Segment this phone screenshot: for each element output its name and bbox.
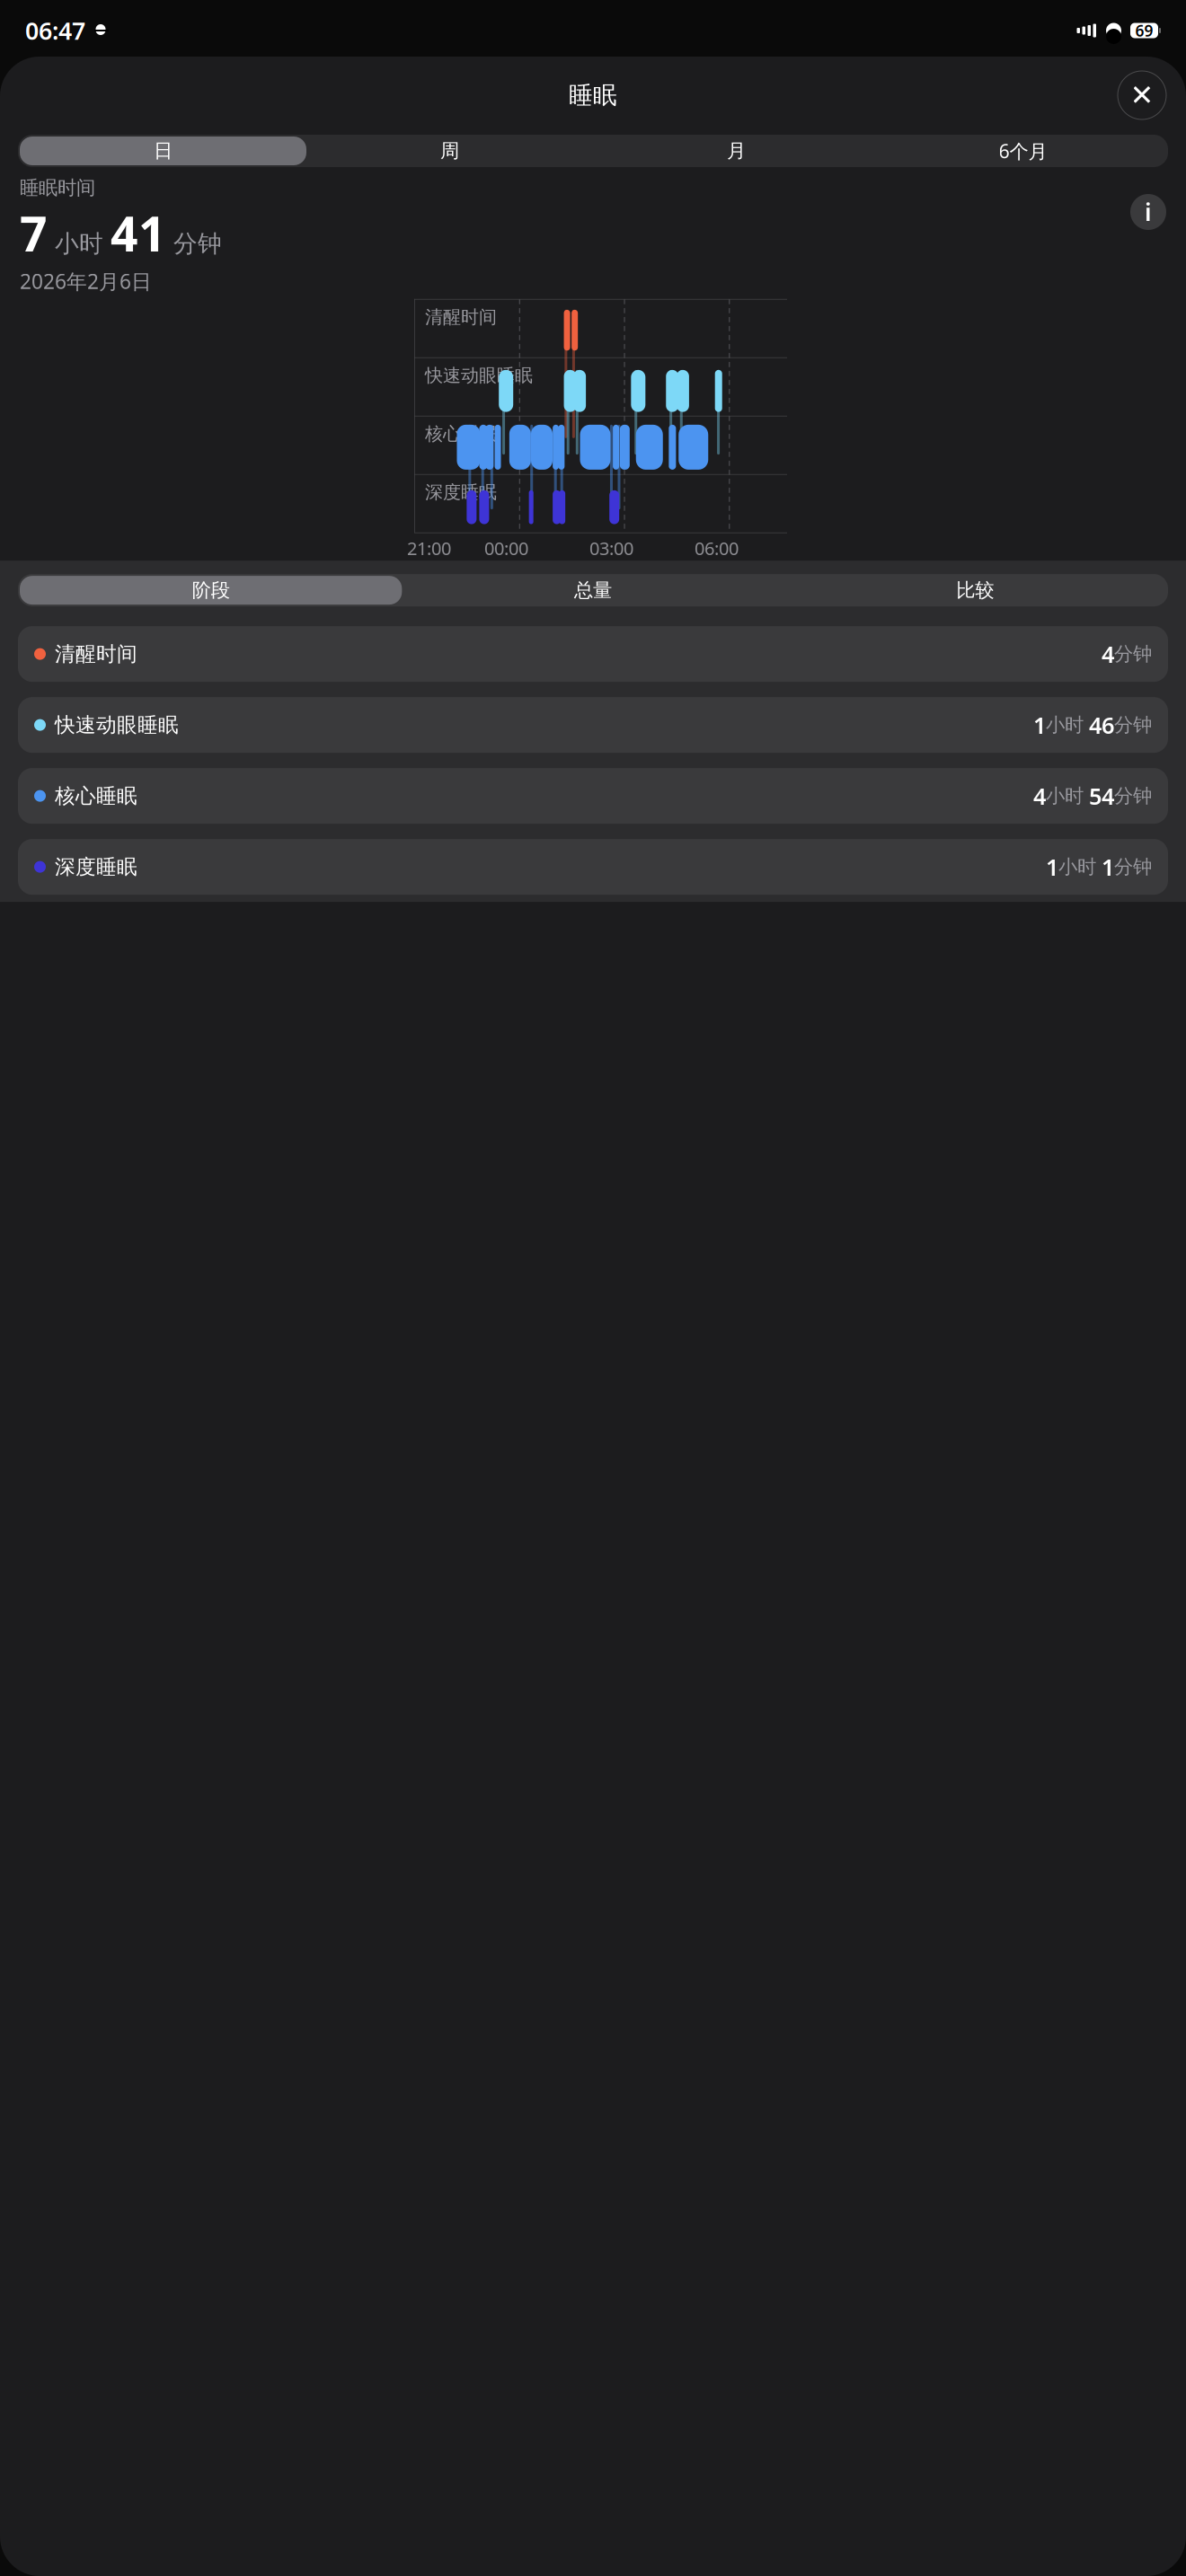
staticText: 4 <box>1033 781 1046 811</box>
staticText: 7 <box>20 201 48 265</box>
staticText: 清醒时间 <box>425 306 497 328</box>
staticText: 1 <box>1033 710 1046 740</box>
staticText: 分钟 <box>1114 642 1152 666</box>
staticText: 睡眠时间 <box>20 176 95 200</box>
staticText: 1 <box>1046 852 1058 882</box>
button[interactable]: 快速动眼睡眠 <box>18 697 1168 753</box>
staticText: 小时 <box>1046 713 1089 737</box>
staticText: 分钟 <box>166 229 222 259</box>
staticText: 6个月 <box>999 138 1047 164</box>
staticText: 清醒时间 <box>55 641 137 666</box>
staticText: 21:00 <box>407 536 451 560</box>
staticText: 快速动眼睡眠 <box>425 364 533 387</box>
staticText: 小时 <box>48 229 111 259</box>
staticText: 周 <box>440 139 459 163</box>
button[interactable]: 周 <box>306 137 593 165</box>
button[interactable]: 清醒时间 <box>18 626 1168 682</box>
staticText: 分钟 <box>1114 784 1152 808</box>
staticText: 阶段 <box>192 578 230 602</box>
staticText: 46 <box>1089 710 1114 740</box>
staticText: 核心睡眠 <box>55 783 137 808</box>
staticText: 分钟 <box>1114 713 1152 737</box>
staticText: 00:00 <box>484 536 528 560</box>
staticText: 41 <box>111 201 166 265</box>
staticText: 深度睡眠 <box>425 481 497 503</box>
button[interactable]: 日 <box>20 137 306 165</box>
staticText: ✕ <box>1130 79 1154 111</box>
staticText: 核心睡眠 <box>425 423 497 445</box>
staticText: 69 <box>1135 20 1153 41</box>
staticText: 54 <box>1089 781 1114 811</box>
staticText: 总量 <box>574 578 612 602</box>
button[interactable]: 核心睡眠 <box>18 768 1168 824</box>
staticText: 月 <box>727 139 746 163</box>
staticText: 03:00 <box>589 536 633 560</box>
staticText: 小时 <box>1058 855 1102 879</box>
staticText: 快速动眼睡眠 <box>55 712 179 737</box>
staticText: 4 <box>1102 639 1114 669</box>
button[interactable]: 关闭 <box>1118 71 1166 119</box>
button[interactable]: 月 <box>593 137 880 165</box>
button[interactable]: 更多信息 <box>1130 194 1166 230</box>
button[interactable]: 阶段 <box>20 576 402 605</box>
staticText: 分钟 <box>1114 855 1152 879</box>
staticText: i <box>1145 196 1152 228</box>
button[interactable]: 比较 <box>784 576 1166 605</box>
button[interactable]: 6个月 <box>880 137 1166 165</box>
staticText: 2026年2月6日 <box>20 268 152 295</box>
staticText: 小时 <box>1046 784 1089 808</box>
button[interactable]: 总量 <box>402 576 784 605</box>
staticText: 1 <box>1102 852 1114 882</box>
button[interactable]: 深度睡眠 <box>18 839 1168 895</box>
staticText: 睡眠 <box>569 80 617 110</box>
staticText: 深度睡眠 <box>55 854 137 879</box>
staticText: 比较 <box>956 578 994 602</box>
staticText: 日 <box>154 139 173 163</box>
staticText: 06:47 <box>25 15 85 46</box>
staticText: 06:00 <box>695 536 739 560</box>
